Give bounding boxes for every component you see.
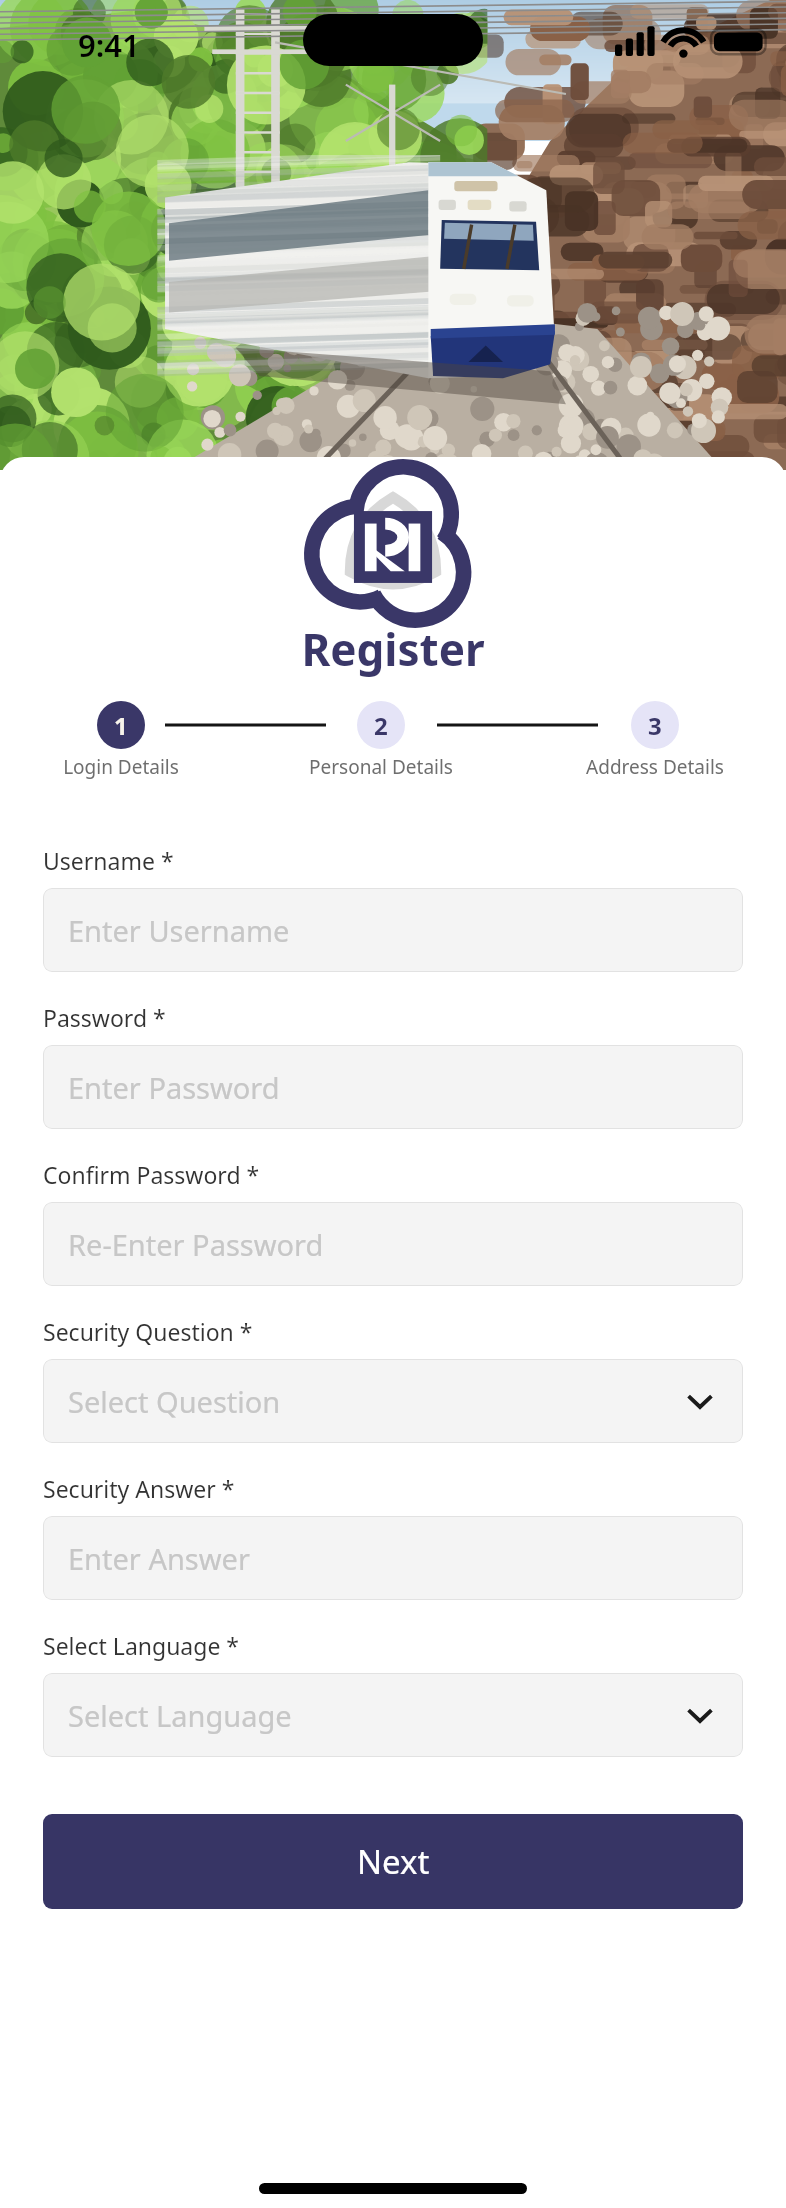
staticText: Security Question * bbox=[43, 1316, 253, 1347]
staticText: Enter Username bbox=[68, 911, 290, 950]
button[interactable]: Next bbox=[43, 1814, 743, 1909]
staticText: Address Details bbox=[586, 754, 724, 779]
staticText: Confirm Password * bbox=[43, 1159, 260, 1190]
staticText: Re-Enter Password bbox=[68, 1225, 324, 1264]
staticText: Password * bbox=[43, 1002, 166, 1033]
staticText: Username * bbox=[43, 845, 174, 876]
staticText: 1 bbox=[114, 709, 128, 742]
staticText: Select Language bbox=[68, 1696, 292, 1735]
other: Open Security Question * list bbox=[685, 1386, 715, 1416]
button[interactable]: Enter Answer bbox=[43, 1516, 743, 1600]
other: Open Select Language * list bbox=[685, 1700, 715, 1730]
staticText: Select Language * bbox=[43, 1630, 240, 1661]
button[interactable]: Select Language bbox=[43, 1673, 743, 1757]
staticText: 2 bbox=[374, 709, 388, 742]
button[interactable]: 1 bbox=[31, 701, 211, 779]
staticText: Enter Answer bbox=[68, 1539, 250, 1578]
staticText: 3 bbox=[648, 709, 662, 742]
button[interactable]: Enter Username bbox=[43, 888, 743, 972]
staticText: Personal Details bbox=[309, 754, 453, 779]
staticText: Security Answer * bbox=[43, 1473, 235, 1504]
button[interactable]: Re-Enter Password bbox=[43, 1202, 743, 1286]
button[interactable]: Enter Password bbox=[43, 1045, 743, 1129]
button[interactable]: 2 bbox=[291, 701, 471, 779]
staticText: Register bbox=[301, 619, 485, 679]
staticText: Next bbox=[357, 1839, 430, 1884]
button[interactable]: 3 bbox=[565, 701, 745, 779]
staticText: 9:41 bbox=[78, 24, 140, 66]
button[interactable]: Select Question bbox=[43, 1359, 743, 1443]
staticText: Select Question bbox=[68, 1382, 281, 1421]
staticText: Enter Password bbox=[68, 1068, 280, 1107]
staticText: Login Details bbox=[63, 754, 179, 779]
